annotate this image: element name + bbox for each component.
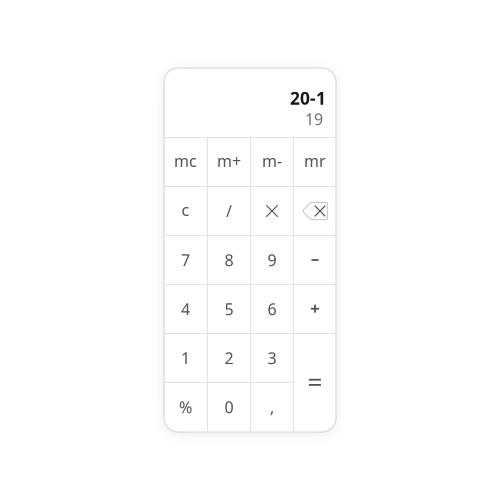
button[interactable]: 7 [164, 236, 207, 284]
button[interactable]: % [164, 383, 207, 431]
button[interactable]: Delete [294, 187, 336, 235]
staticText: 8 [224, 249, 233, 271]
button[interactable]: Equals [294, 334, 336, 431]
button[interactable]: m+ [208, 138, 250, 186]
staticText: c [181, 199, 189, 220]
button[interactable]: 0 [208, 383, 250, 431]
button[interactable]: mc [164, 138, 207, 186]
button[interactable]: 4 [164, 285, 207, 333]
staticText: / [226, 200, 232, 222]
staticText: 4 [181, 298, 190, 320]
button[interactable]: Minus [294, 236, 336, 284]
staticText: 19 [305, 108, 323, 130]
staticText: 1 [181, 347, 190, 369]
button[interactable]: 6 [251, 285, 293, 333]
button[interactable]: 8 [208, 236, 250, 284]
button[interactable]: 2 [208, 334, 250, 382]
button[interactable]: 3 [251, 334, 293, 382]
staticText: , [270, 396, 274, 418]
button[interactable]: c [164, 187, 207, 235]
staticText: mc [174, 150, 197, 171]
button[interactable]: m- [251, 138, 293, 186]
button[interactable]: 5 [208, 285, 250, 333]
button[interactable]: , [251, 383, 293, 431]
staticText: mr [304, 150, 326, 171]
staticText: 0 [224, 396, 233, 418]
staticText: % [179, 396, 192, 418]
button[interactable]: 9 [251, 236, 293, 284]
staticText: 6 [267, 298, 276, 320]
staticText: 20-1 [290, 86, 326, 109]
staticText: m- [262, 150, 282, 171]
staticText: 2 [224, 347, 233, 369]
staticText: 7 [181, 249, 190, 271]
staticText: m+ [217, 150, 241, 171]
staticText: 9 [267, 249, 276, 271]
staticText: 5 [224, 298, 233, 320]
button[interactable]: Multiply [251, 187, 293, 235]
button[interactable]: mr [294, 138, 336, 186]
staticText: 3 [267, 347, 276, 369]
button[interactable]: 1 [164, 334, 207, 382]
button[interactable]: / [208, 187, 250, 235]
button[interactable]: Plus [294, 285, 336, 333]
